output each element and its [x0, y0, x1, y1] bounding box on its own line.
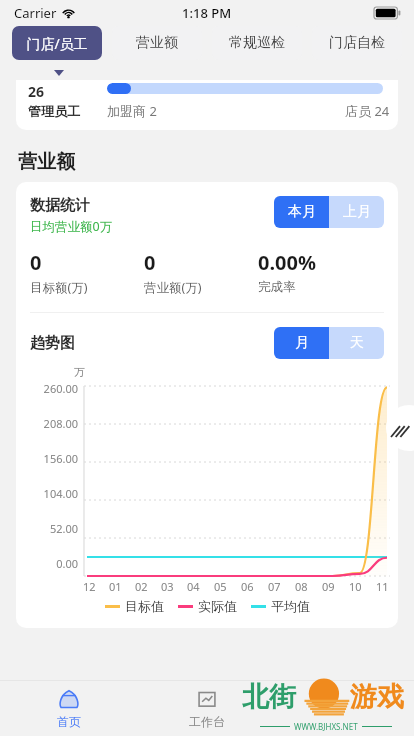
- staticText: 0.00: [56, 556, 78, 571]
- staticText: 首页: [57, 714, 81, 729]
- staticText: 管理员工: [28, 103, 80, 119]
- staticText: 游戏: [350, 680, 404, 714]
- staticText: 10: [349, 579, 362, 594]
- staticText: 02: [135, 579, 148, 594]
- staticText: 月: [295, 334, 309, 352]
- staticText: 26: [28, 82, 45, 101]
- staticText: 208.00: [43, 416, 78, 431]
- staticText: 营业额: [136, 34, 178, 52]
- button[interactable]: 上月: [329, 196, 384, 228]
- button[interactable]: 本月: [274, 196, 329, 228]
- staticText: 1:18 PM: [182, 4, 232, 22]
- staticText: Carrier: [14, 4, 57, 22]
- button[interactable]: 营业额: [112, 26, 202, 60]
- button[interactable]: 26: [16, 80, 398, 130]
- staticText: 营业额: [18, 150, 75, 174]
- button[interactable]: 门店自检: [312, 26, 402, 60]
- button[interactable]: 门店/员工: [12, 26, 102, 60]
- staticText: 156.00: [43, 451, 78, 466]
- staticText: 09: [322, 579, 335, 594]
- staticText: 天: [350, 334, 364, 352]
- button[interactable]: Quick action: [386, 405, 414, 451]
- button[interactable]: 月: [274, 327, 329, 359]
- staticText: 03: [161, 579, 174, 594]
- staticText: 目标值: [125, 598, 164, 614]
- staticText: 12: [83, 579, 96, 594]
- staticText: 实际值: [198, 598, 237, 614]
- button[interactable]: 工作台: [138, 681, 276, 736]
- staticText: 260.00: [43, 381, 78, 396]
- staticText: 店员 24: [345, 102, 390, 120]
- staticText: 06: [241, 579, 254, 594]
- staticText: 本月: [288, 203, 316, 221]
- staticText: 门店/员工: [26, 34, 88, 53]
- staticText: 门店自检: [329, 34, 385, 52]
- staticText: 日均营业额0万: [30, 218, 113, 235]
- staticText: 104.00: [43, 486, 78, 501]
- button[interactable]: 首页: [0, 681, 138, 736]
- staticText: 0.00%: [258, 249, 316, 276]
- staticText: 上月: [343, 203, 371, 221]
- staticText: 趋势图: [30, 334, 274, 353]
- staticText: 11: [376, 579, 389, 594]
- staticText: 加盟商 2: [107, 102, 157, 120]
- staticText: 08: [295, 579, 308, 594]
- staticText: 平均值: [271, 598, 310, 614]
- staticText: 工作台: [189, 714, 225, 729]
- staticText: 0: [144, 249, 156, 276]
- staticText: 05: [214, 579, 227, 594]
- staticText: 04: [187, 579, 200, 594]
- button[interactable]: 常规巡检: [212, 26, 302, 60]
- staticText: WWW.BJHXS.NET: [294, 721, 358, 732]
- button[interactable]: 天: [329, 327, 384, 359]
- staticText: 常规巡检: [229, 34, 285, 52]
- staticText: 目标额(万): [30, 279, 88, 296]
- staticText: 07: [268, 579, 281, 594]
- staticText: 万: [74, 365, 85, 379]
- staticText: 完成率: [258, 279, 296, 295]
- staticText: 52.00: [49, 521, 78, 536]
- staticText: 0: [30, 249, 42, 276]
- staticText: 北街: [242, 680, 296, 714]
- staticText: 01: [109, 579, 122, 594]
- staticText: 数据统计: [30, 196, 90, 215]
- staticText: 营业额(万): [144, 279, 202, 296]
